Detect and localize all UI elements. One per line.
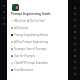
- button[interactable]: Strategic Uses of Prompts: [11, 45, 66, 52]
- button[interactable]: Free Resources: [11, 66, 66, 73]
- button[interactable]: AI Key Prompt Engineering: [11, 38, 66, 45]
- button[interactable]: What Can AI Do For You?: [11, 17, 66, 24]
- button[interactable]: App icon: [12, 4, 19, 11]
- staticText: AI Glossary: [14, 26, 29, 30]
- staticText: Prompt Engineering Basics: [14, 33, 48, 37]
- staticText: ChatGPT Prompt Examples: [14, 61, 48, 65]
- staticText: AI Key Prompt Engineering: [14, 40, 48, 44]
- button[interactable]: Prompt Engineering Basics: [11, 31, 66, 38]
- button[interactable]: AI Glossary: [11, 24, 66, 31]
- staticText: Free Resources: [14, 68, 34, 72]
- staticText: Prompt Engineering Guide: [11, 12, 51, 16]
- button[interactable]: ChatGPT Prompt Examples: [11, 59, 66, 66]
- button[interactable]: Tips for Prompts: [11, 52, 66, 59]
- staticText: What Can AI Do For You?: [14, 19, 46, 23]
- staticText: Strategic Uses of Prompts: [14, 47, 47, 51]
- staticText: Tips for Prompts: [14, 54, 35, 58]
